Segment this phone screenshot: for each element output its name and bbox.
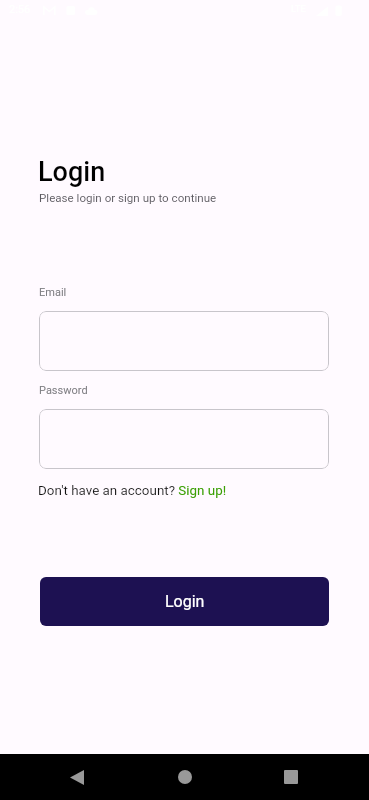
button[interactable]: Login (40, 577, 329, 626)
staticText: Please login or sign up to continue (39, 191, 217, 205)
button[interactable]: Don't have an account? Sign up! (38, 483, 227, 499)
staticText: Login (165, 592, 205, 611)
button[interactable]: Email input field (39, 311, 329, 371)
button[interactable]: Home (170, 762, 200, 792)
button[interactable]: Password input field (39, 409, 329, 469)
staticText: Login (38, 156, 106, 188)
staticText: Don't have an account? Sign up! (38, 483, 227, 499)
staticText: Password (39, 384, 88, 397)
button[interactable]: Back (62, 762, 92, 792)
staticText: Email (39, 286, 67, 299)
button[interactable]: Recent apps (276, 762, 306, 792)
